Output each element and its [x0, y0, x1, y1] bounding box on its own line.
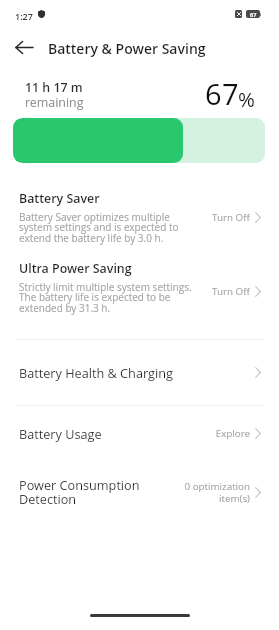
button[interactable]: Battery Saver [0, 186, 279, 248]
button[interactable]: Battery Usage [0, 405, 279, 462]
staticText: Battery Saver [19, 190, 100, 207]
staticText: Power Consumption Detection [19, 476, 140, 508]
staticText: Strictly limit multiple system settings.… [19, 280, 192, 315]
staticText: Battery Usage [19, 425, 102, 442]
staticText: Ultra Power Saving [19, 260, 132, 277]
button[interactable]: Battery Health & Charging [0, 339, 279, 405]
button[interactable]: Ultra Power Saving [0, 256, 279, 318]
staticText: % [238, 85, 255, 113]
staticText: 1:27 [15, 10, 33, 22]
staticText: Turn Off [212, 285, 250, 297]
staticText: 67 [205, 74, 239, 113]
staticText: Battery & Power Saving [48, 39, 206, 58]
staticText: Explore [215, 427, 250, 440]
staticText: 67 [250, 11, 257, 18]
staticText: 11 h 17 m [25, 79, 83, 96]
staticText: Battery Health & Charging [19, 364, 173, 381]
staticText: Battery Saver optimizes multiple system … [19, 210, 179, 245]
staticText: Turn Off [212, 211, 250, 223]
button[interactable]: Power Consumption Detection [0, 462, 279, 522]
staticText: remaining [25, 94, 84, 111]
button[interactable]: Back [5, 36, 43, 58]
staticText: 0 optimization item(s) [184, 480, 250, 505]
